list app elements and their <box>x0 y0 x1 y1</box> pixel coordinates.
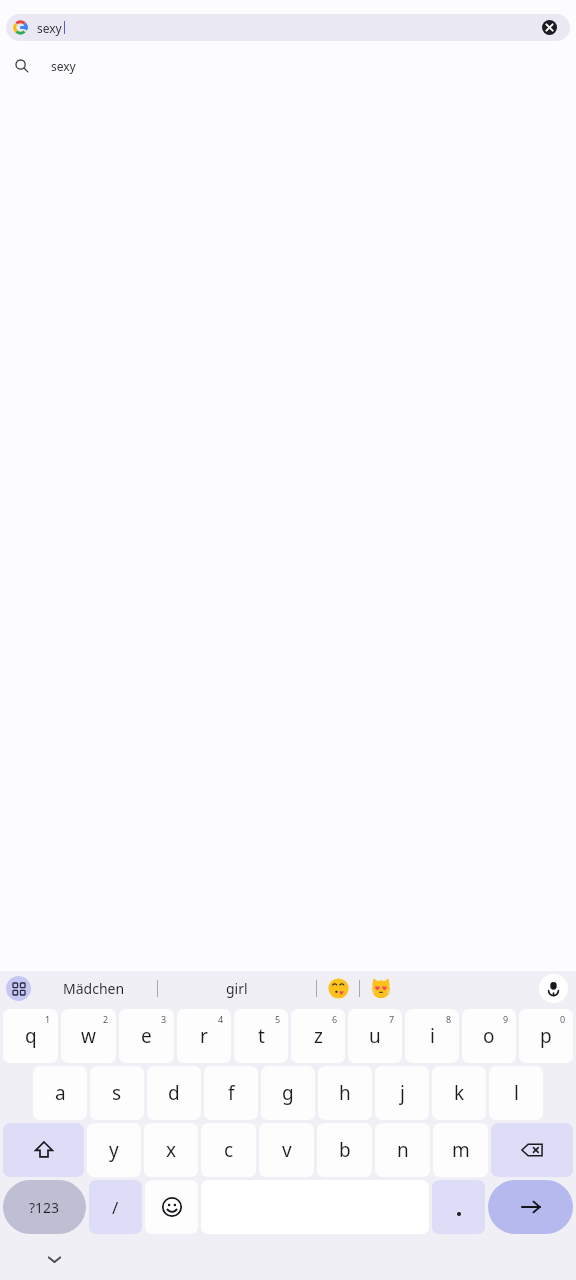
staticText: girl <box>226 979 248 998</box>
staticText: b <box>339 1137 351 1163</box>
button[interactable]: m <box>433 1123 488 1177</box>
staticText: 1 <box>45 1013 51 1025</box>
button[interactable]: u <box>348 1009 402 1063</box>
button[interactable]: sexy <box>6 14 570 41</box>
staticText: k <box>454 1080 465 1106</box>
button[interactable]: b <box>317 1123 372 1177</box>
button[interactable]: l <box>489 1066 543 1120</box>
staticText: Mädchen <box>63 979 125 998</box>
staticText: r <box>200 1023 208 1049</box>
button[interactable]: z <box>291 1009 345 1063</box>
button[interactable]: s <box>90 1066 144 1120</box>
button[interactable]: a <box>33 1066 87 1120</box>
button[interactable]: p <box>519 1009 573 1063</box>
staticText: c <box>224 1137 234 1163</box>
button[interactable]: d <box>147 1066 201 1120</box>
button[interactable] <box>432 1180 485 1234</box>
button[interactable]: v <box>259 1123 314 1177</box>
button[interactable]: Kissing face emoji <box>317 971 359 1005</box>
button[interactable]: c <box>201 1123 256 1177</box>
button[interactable]: t <box>234 1009 288 1063</box>
staticText: 7 <box>389 1013 395 1025</box>
button[interactable]: Heart eyes cat emoji <box>360 971 402 1005</box>
staticText: h <box>339 1080 351 1106</box>
staticText: 5 <box>275 1013 281 1025</box>
staticText: sexy <box>37 20 62 36</box>
button[interactable]: Hide keyboard <box>40 1245 68 1273</box>
button[interactable]: ?123 <box>3 1180 86 1234</box>
button[interactable]: Mädchen <box>31 971 157 1005</box>
staticText: y <box>109 1137 119 1163</box>
button[interactable]: sexy <box>0 53 576 79</box>
button[interactable]: girl <box>158 971 316 1005</box>
staticText: u <box>369 1023 381 1049</box>
button[interactable]: j <box>375 1066 429 1120</box>
button[interactable]: h <box>318 1066 372 1120</box>
staticText: 4 <box>218 1013 224 1025</box>
button[interactable]: Shift <box>3 1123 84 1177</box>
staticText: 9 <box>503 1013 509 1025</box>
button[interactable]: g <box>261 1066 315 1120</box>
staticText: 2 <box>103 1013 109 1025</box>
staticText: f <box>228 1080 235 1106</box>
button[interactable]: y <box>87 1123 141 1177</box>
staticText: l <box>514 1080 519 1106</box>
staticText: v <box>282 1137 292 1163</box>
button[interactable]: x <box>144 1123 198 1177</box>
staticText: w <box>81 1023 96 1049</box>
staticText: / <box>112 1196 119 1219</box>
staticText: ?123 <box>29 1198 60 1217</box>
button[interactable]: f <box>204 1066 258 1120</box>
staticText: z <box>314 1023 323 1049</box>
button[interactable]: Backspace <box>491 1123 573 1177</box>
button[interactable]: w <box>61 1009 116 1063</box>
staticText: n <box>397 1137 409 1163</box>
button[interactable]: n <box>375 1123 430 1177</box>
staticText: t <box>258 1023 265 1049</box>
button[interactable]: Voice input <box>539 974 568 1003</box>
staticText: a <box>55 1080 66 1106</box>
staticText: x <box>166 1137 177 1163</box>
staticText: s <box>112 1080 122 1106</box>
button[interactable]: Emoji <box>145 1180 198 1234</box>
button[interactable]: r <box>177 1009 231 1063</box>
staticText: 8 <box>446 1013 452 1025</box>
staticText: 3 <box>161 1013 167 1025</box>
staticText: j <box>400 1080 405 1106</box>
staticText: g <box>282 1080 294 1106</box>
staticText: p <box>540 1023 552 1049</box>
staticText: 6 <box>332 1013 338 1025</box>
button[interactable]: e <box>119 1009 174 1063</box>
button[interactable]: Search <box>488 1180 573 1234</box>
staticText: o <box>483 1023 495 1049</box>
button[interactable]: Clear search <box>536 14 563 41</box>
button[interactable]: Keyboard toolbar <box>6 976 31 1001</box>
button[interactable]: / <box>89 1180 142 1234</box>
staticText: m <box>452 1137 470 1163</box>
button[interactable]: q <box>3 1009 58 1063</box>
staticText: q <box>25 1023 37 1049</box>
staticText: sexy <box>51 58 76 74</box>
button[interactable]: o <box>462 1009 516 1063</box>
staticText: e <box>141 1023 152 1049</box>
staticText: i <box>430 1023 435 1049</box>
staticText: 0 <box>560 1013 566 1025</box>
button[interactable]: k <box>432 1066 486 1120</box>
staticText: d <box>168 1080 180 1106</box>
button[interactable]: i <box>405 1009 459 1063</box>
